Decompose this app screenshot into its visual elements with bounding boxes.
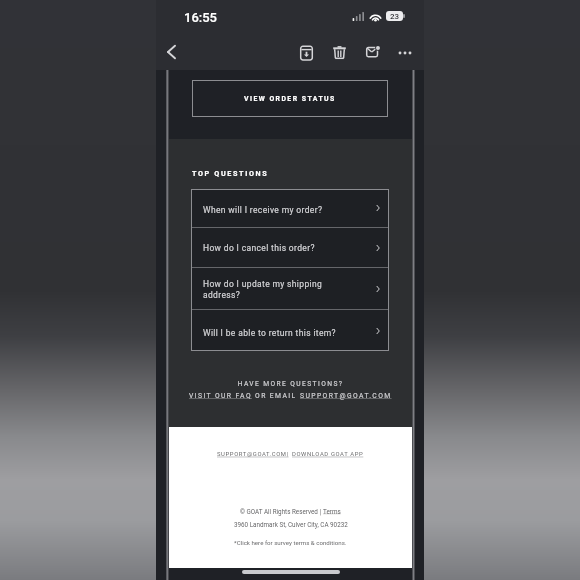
button[interactable]: Archive xyxy=(293,39,319,65)
staticText: 16:55 xyxy=(184,10,218,25)
staticText: HAVE MORE QUESTIONS? xyxy=(169,380,412,388)
staticText: When will I receive my order? xyxy=(203,205,372,215)
button[interactable]: VISIT OUR FAQ xyxy=(189,392,252,400)
button[interactable]: Will I be able to return this item? xyxy=(191,310,389,351)
button[interactable]: How do I update my shipping address? xyxy=(191,268,389,309)
staticText: 23 xyxy=(390,12,400,21)
button[interactable]: SUPPORT@GOAT.COM| xyxy=(217,451,289,458)
staticText: OR EMAIL xyxy=(252,392,300,400)
button[interactable]: Back xyxy=(154,38,182,66)
button[interactable]: More options xyxy=(391,39,417,65)
staticText: *Click here for survey terms & condition… xyxy=(234,539,347,546)
staticText: © GOAT All Rights Reserved | xyxy=(240,508,323,515)
button[interactable]: How do I cancel this order? xyxy=(191,228,389,267)
button[interactable]: SUPPORT@GOAT.COM xyxy=(300,392,392,400)
staticText: 3960 Landmark St, Culver City, CA 90232 xyxy=(234,521,348,528)
button[interactable]: When will I receive my order? xyxy=(191,189,389,227)
staticText: Will I be able to return this item? xyxy=(203,328,372,338)
button[interactable]: Delete xyxy=(326,39,352,65)
button[interactable]: Mark unread xyxy=(359,39,385,65)
staticText: How do I cancel this order? xyxy=(203,243,372,253)
staticText: How do I update my shipping address? xyxy=(203,279,372,300)
staticText: VIEW ORDER STATUS xyxy=(244,95,336,103)
button[interactable]: VIEW ORDER STATUS xyxy=(192,80,388,117)
button[interactable]: Terms xyxy=(323,508,341,515)
staticText: TOP QUESTIONS xyxy=(192,169,269,177)
button[interactable]: DOWNLOAD GOAT APP xyxy=(292,451,364,458)
